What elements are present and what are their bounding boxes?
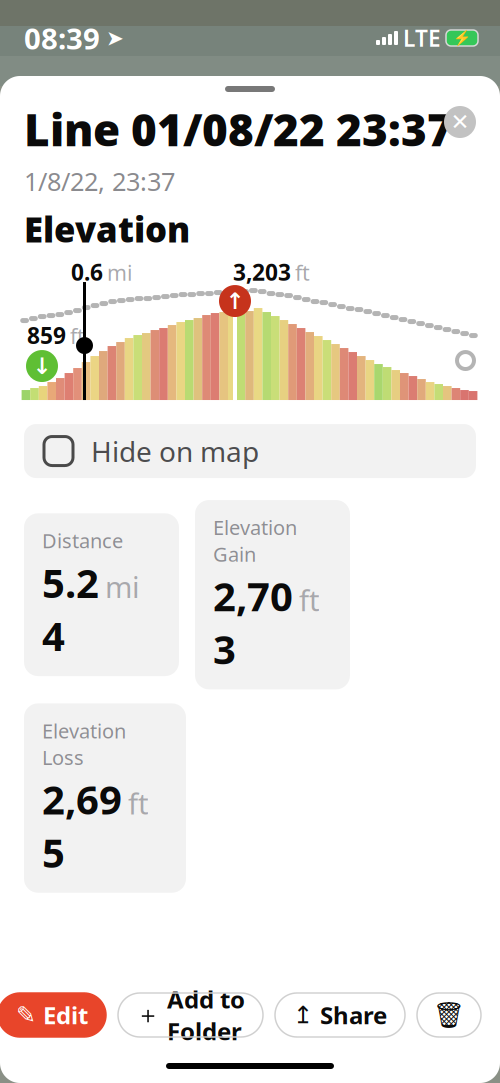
staticText: mi [107, 258, 133, 287]
staticText: ↥ [293, 1001, 313, 1029]
staticText: ft [299, 580, 320, 619]
staticText: ⚡ [453, 30, 471, 46]
staticText: 🗑 [433, 1000, 465, 1029]
staticText: Hide on map [91, 432, 259, 470]
button[interactable]: ↥ [275, 993, 405, 1037]
staticText: 859 [27, 320, 66, 350]
staticText: Add to Folder [167, 983, 245, 1047]
staticText: 2,703 [213, 569, 293, 675]
staticText: 2,695 [42, 772, 122, 879]
staticText: Distance [42, 527, 123, 554]
staticText: ✕ [450, 109, 469, 135]
button[interactable]: ＋ [118, 993, 263, 1037]
staticText: ＋ [136, 1000, 160, 1030]
button[interactable]: Delete [417, 993, 481, 1037]
staticText: ✎ [16, 1001, 36, 1029]
staticText: 08:39 [24, 18, 100, 57]
staticText: Edit [43, 999, 88, 1031]
staticText: 3,203 [233, 257, 291, 287]
button[interactable]: ✎ [0, 993, 106, 1037]
staticText: 1/8/22, 23:37 [24, 164, 175, 198]
staticText: 0.6 [71, 257, 103, 287]
staticText: ↓ [32, 353, 51, 379]
staticText: mi [105, 567, 140, 606]
staticText: ft [128, 784, 149, 823]
staticText: Elevation Loss [42, 717, 126, 770]
staticText: ↑ [225, 288, 244, 314]
staticText: ➤ [106, 26, 124, 50]
staticText: ft [295, 258, 310, 287]
staticText: LTE [403, 23, 441, 53]
staticText: Elevation Gain [213, 514, 297, 567]
staticText: Share [320, 999, 387, 1031]
staticText: ft [70, 321, 85, 350]
button[interactable]: Close [444, 106, 476, 138]
staticText: Elevation [24, 206, 190, 252]
staticText: Line 01/08/22 23:37 [24, 100, 453, 158]
staticText: 5.24 [42, 556, 99, 662]
button[interactable]: Hide on map [24, 424, 476, 478]
